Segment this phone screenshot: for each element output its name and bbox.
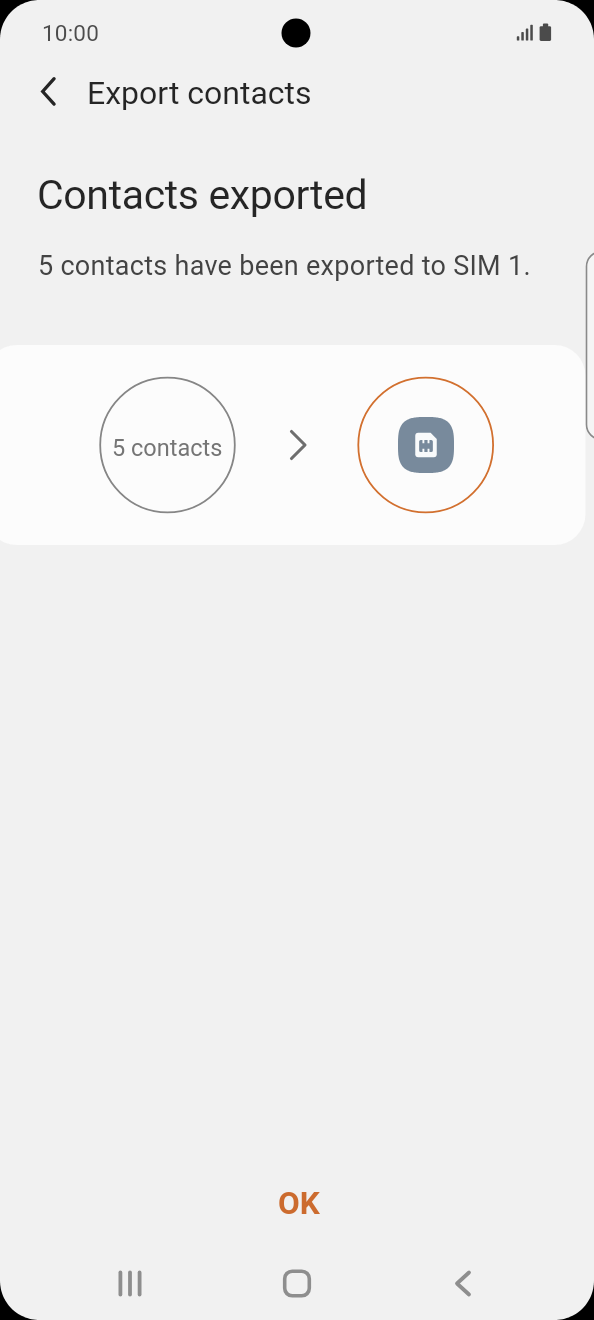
staticText: Contacts exported [37,171,368,219]
button[interactable]: Home [261,1247,333,1319]
button[interactable]: 5 contacts [0,345,594,545]
button[interactable]: Recent apps [94,1247,166,1319]
staticText: 10:00 [42,20,100,46]
staticText: 5 contacts have been exported to SIM 1. [38,250,531,282]
staticText: 5 contacts [112,434,223,462]
staticText: Export contacts [87,74,312,112]
button[interactable]: Navigate up [20,68,66,114]
button[interactable]: OK [0,1173,594,1233]
button[interactable]: Next [586,251,594,440]
button[interactable]: Back [427,1247,499,1319]
staticText: OK [278,1185,320,1222]
